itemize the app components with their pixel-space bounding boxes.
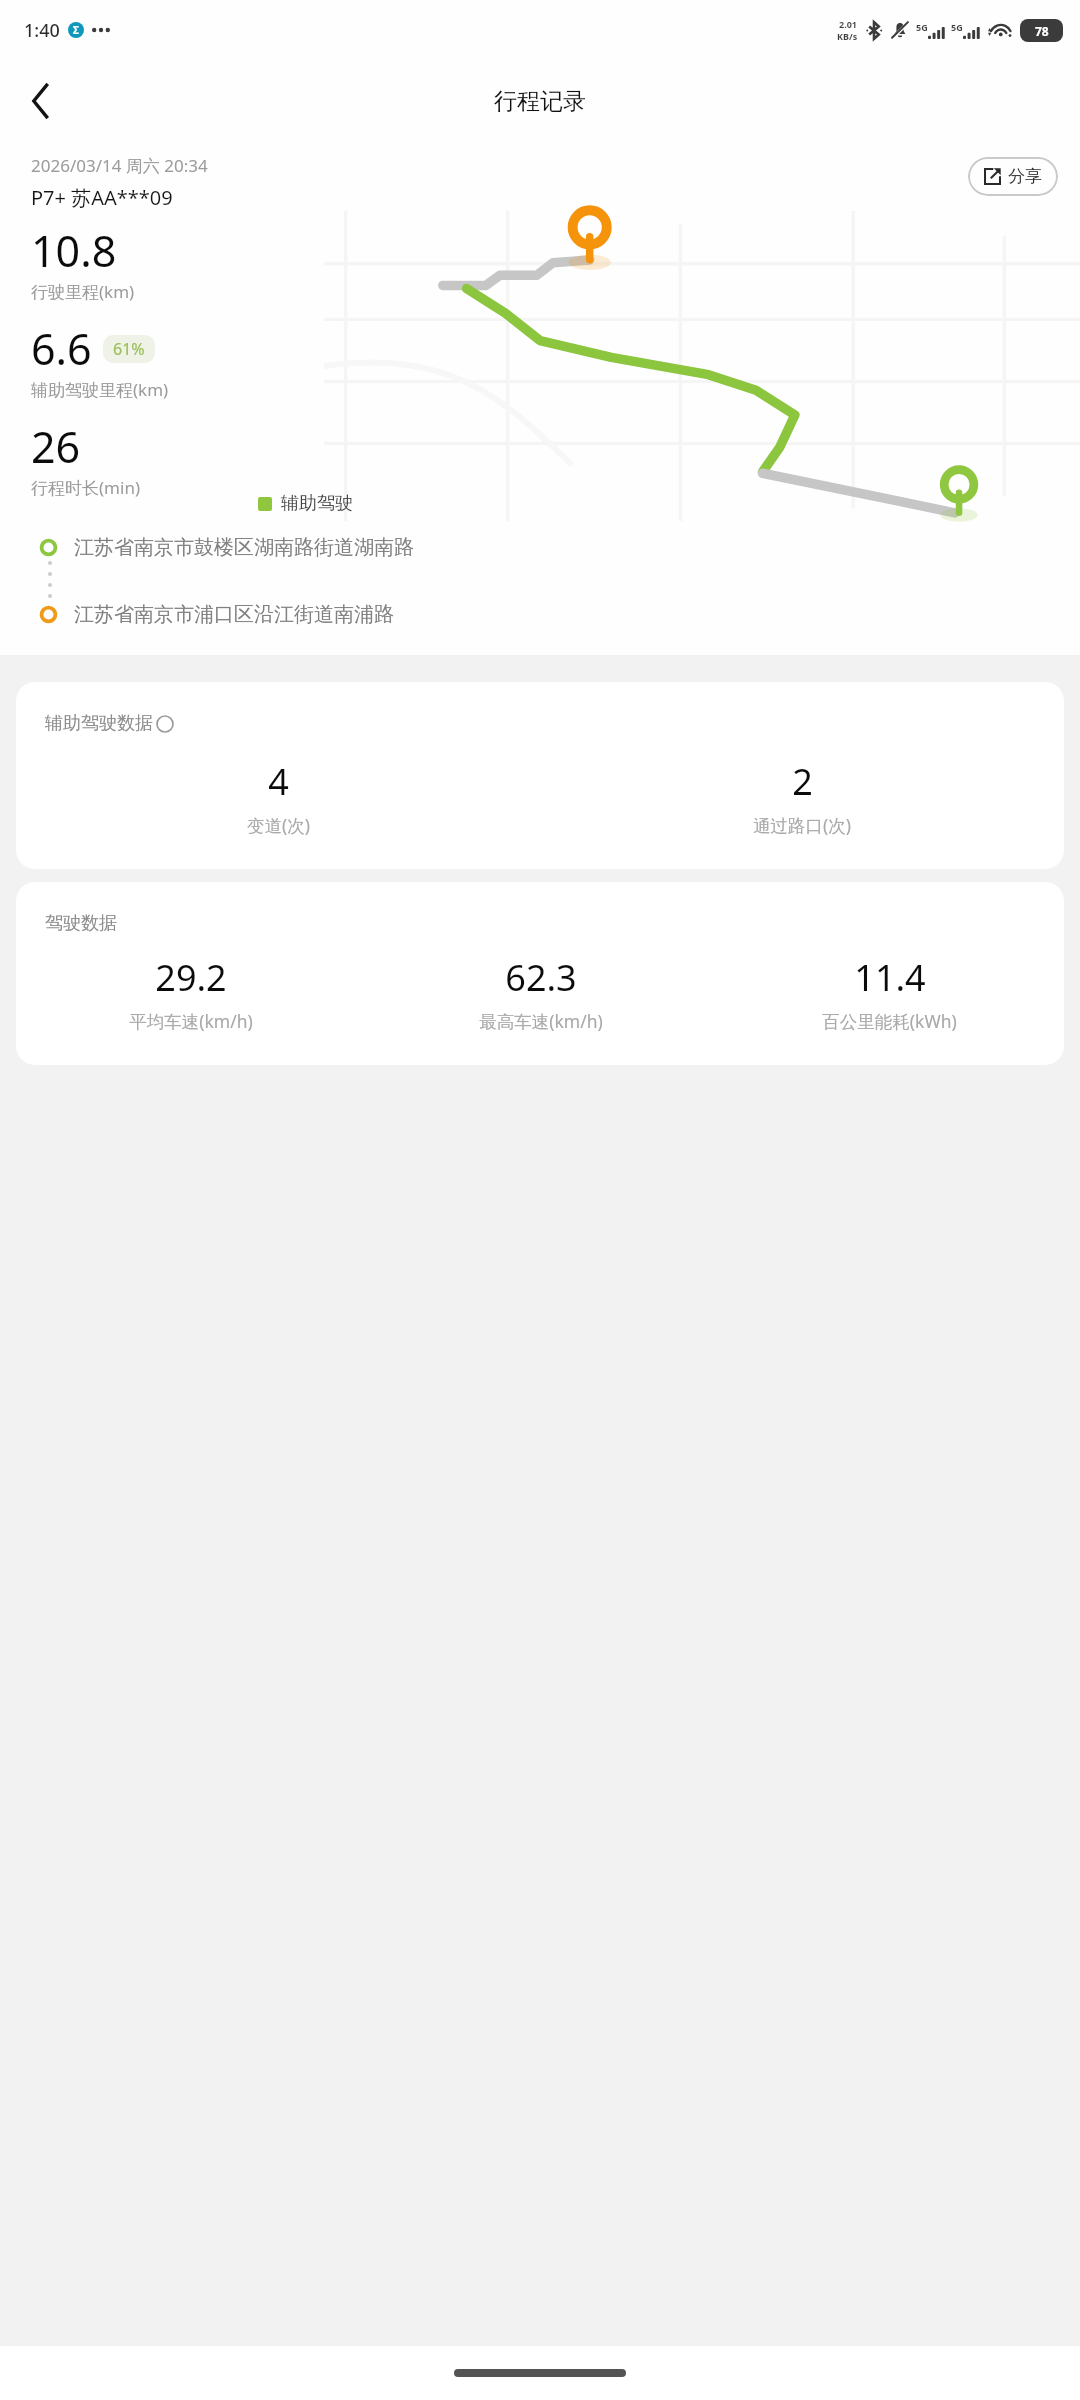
staticText: 最高车速(km/h): [479, 1009, 603, 1033]
staticText: 11.4: [854, 953, 926, 1002]
staticText: 5G: [916, 21, 928, 33]
staticText: 78: [1035, 23, 1049, 39]
staticText: Σ: [73, 23, 79, 37]
staticText: 5G: [951, 21, 963, 33]
staticText: 变道(次): [247, 813, 310, 837]
staticText: 1:40: [24, 18, 60, 43]
button[interactable]: 驾驶数据: [16, 882, 1064, 1065]
staticText: 行程时长(min): [31, 476, 140, 499]
staticText: 2: [792, 757, 813, 806]
button[interactable]: Back: [12, 72, 70, 130]
staticText: 2.01: [839, 18, 857, 30]
staticText: 辅助驾驶: [281, 492, 353, 515]
staticText: 26: [31, 417, 81, 476]
staticText: 61%: [113, 338, 145, 360]
staticText: 辅助驾驶里程(km): [31, 378, 169, 401]
staticText: 江苏省南京市鼓楼区湖南路街道湖南路: [74, 535, 414, 560]
staticText: 通过路口(次): [753, 813, 851, 837]
staticText: 辅助驾驶数据: [45, 712, 153, 735]
staticText: 行驶里程(km): [31, 280, 135, 303]
staticText: 29.2: [155, 953, 227, 1002]
staticText: 分享: [1008, 166, 1042, 187]
staticText: 62.3: [505, 953, 577, 1002]
staticText: 驾驶数据: [45, 912, 117, 935]
staticText: 百公里能耗(kWh): [822, 1009, 957, 1033]
staticText: 10.8: [31, 221, 117, 280]
staticText: 平均车速(km/h): [129, 1009, 253, 1033]
button[interactable]: 分享: [968, 157, 1058, 196]
staticText: 6.6: [31, 319, 92, 378]
staticText: 4: [268, 757, 289, 806]
staticText: 2026/03/14 周六 20:34: [31, 154, 208, 177]
button[interactable]: 辅助驾驶数据: [16, 682, 1064, 869]
staticText: 江苏省南京市浦口区沿江街道南浦路: [74, 602, 394, 627]
staticText: P7+ 苏AA***09: [31, 184, 173, 211]
staticText: KB/s: [837, 30, 858, 42]
staticText: 行程记录: [494, 87, 586, 116]
